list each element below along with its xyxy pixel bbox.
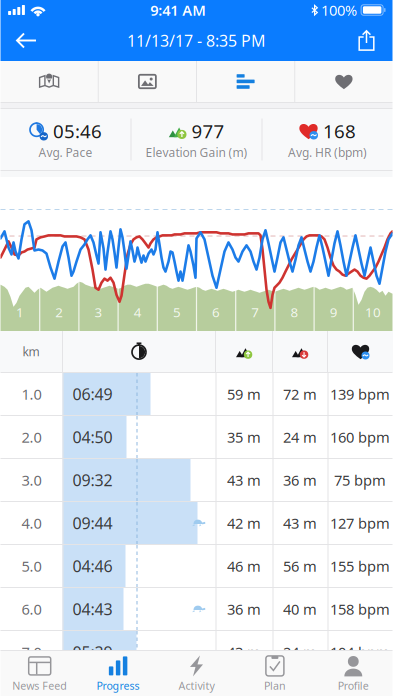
staticText: 11/13/17 - 8:35 PM xyxy=(127,30,266,51)
staticText: 9:41 AM xyxy=(150,0,206,20)
staticText: 24 m xyxy=(283,427,317,447)
staticText: 59 m xyxy=(227,384,261,404)
staticText: km xyxy=(22,343,39,359)
staticText: 6 xyxy=(212,303,220,321)
staticText: 168 xyxy=(323,119,356,143)
button[interactable]: Share xyxy=(344,20,388,61)
staticText: 104 bpm xyxy=(330,642,390,662)
staticText: 75 bpm xyxy=(334,470,386,490)
staticText: 6.0 xyxy=(21,599,41,619)
staticText: 72 m xyxy=(283,384,317,404)
staticText: Elevation Gain (m) xyxy=(145,144,247,160)
staticText: Avg. HR (bpm) xyxy=(288,144,367,160)
staticText: 160 bpm xyxy=(330,427,390,447)
staticText: 36 m xyxy=(227,599,261,619)
staticText: 7 xyxy=(251,303,259,321)
staticText: 7.0 xyxy=(21,642,41,662)
staticText: 40 m xyxy=(283,599,317,619)
button[interactable]: Splits xyxy=(197,61,294,102)
button[interactable]: Profile xyxy=(314,651,392,696)
staticText: 5 xyxy=(173,303,181,321)
staticText: 10 xyxy=(365,303,381,321)
staticText: 5.0 xyxy=(21,556,41,576)
staticText: 24 m xyxy=(283,642,317,662)
staticText: 3 xyxy=(94,303,102,321)
button[interactable]: Progress xyxy=(79,651,157,696)
staticText: 43 m xyxy=(227,470,261,490)
button[interactable]: Plan xyxy=(236,651,314,696)
button[interactable]: Heart rate xyxy=(295,61,392,102)
staticText: 09:32 xyxy=(72,469,112,491)
staticText: 35 m xyxy=(227,427,261,447)
staticText: 127 bpm xyxy=(330,513,390,533)
staticText: 139 bpm xyxy=(330,384,390,404)
staticText: 100% xyxy=(321,0,357,20)
staticText: 05:46 xyxy=(53,119,102,143)
staticText: 1.0 xyxy=(21,384,41,404)
staticText: Activity xyxy=(178,678,214,693)
staticText: 42 m xyxy=(227,513,261,533)
staticText: 155 bpm xyxy=(330,556,390,576)
staticText: 1 xyxy=(16,303,24,321)
staticText: 04:46 xyxy=(72,555,112,577)
staticText: 4 xyxy=(134,303,142,321)
button[interactable]: Photos xyxy=(99,61,196,102)
staticText: 09:44 xyxy=(72,512,112,534)
staticText: 43 m xyxy=(227,642,261,662)
staticText: 977 xyxy=(191,119,224,143)
staticText: Avg. Pace xyxy=(38,144,92,160)
staticText: 43 m xyxy=(283,513,317,533)
staticText: Progress xyxy=(97,678,140,693)
staticText: 2 xyxy=(55,303,63,321)
staticText: 9 xyxy=(330,303,338,321)
button[interactable]: News Feed xyxy=(0,651,79,696)
staticText: News Feed xyxy=(12,678,67,693)
staticText: 2.0 xyxy=(21,427,41,447)
staticText: 56 m xyxy=(283,556,317,576)
button[interactable]: Activity xyxy=(157,651,236,696)
button[interactable]: Back xyxy=(4,20,48,61)
staticText: Plan xyxy=(264,678,286,693)
staticText: 3.0 xyxy=(21,470,41,490)
staticText: 158 bpm xyxy=(330,599,390,619)
staticText: 46 m xyxy=(227,556,261,576)
staticText: Profile xyxy=(338,678,369,693)
staticText: 4.0 xyxy=(21,513,41,533)
staticText: 8 xyxy=(290,303,298,321)
staticText: 04:43 xyxy=(72,598,112,620)
staticText: 04:50 xyxy=(72,426,112,448)
staticText: 36 m xyxy=(283,470,317,490)
staticText: 05:29 xyxy=(72,641,112,663)
button[interactable]: Map xyxy=(0,61,98,102)
staticText: 06:49 xyxy=(72,383,112,405)
